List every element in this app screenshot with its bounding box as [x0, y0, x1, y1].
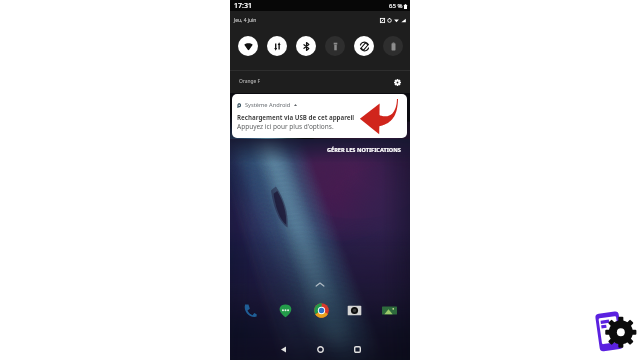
staticText: Jeu, 4 juin: [234, 17, 257, 24]
staticText: Rechargement via USB de cet appareil: [237, 113, 355, 121]
button[interactable]: Recents: [346, 340, 368, 358]
button[interactable]: Settings: [391, 76, 403, 88]
button[interactable]: Phone: [241, 302, 258, 319]
button[interactable]: Photos: [381, 302, 398, 319]
staticText: Appuyez ici pour plus d'options.: [237, 122, 334, 131]
button[interactable]: GÉRER LES NOTIFICATIONS: [325, 144, 403, 156]
button[interactable]: Messages: [277, 302, 294, 319]
staticText: 65 %: [389, 2, 403, 10]
staticText: GÉRER LES NOTIFICATIONS: [327, 146, 401, 154]
button[interactable]: Mobile data: [267, 36, 287, 56]
button[interactable]: Bluetooth: [296, 36, 316, 56]
button[interactable]: Chrome: [313, 302, 330, 319]
staticText: 17:31: [234, 1, 252, 11]
button[interactable]: Camera: [346, 302, 363, 319]
staticText: Système Android: [245, 101, 291, 109]
button[interactable]: Battery saver: [383, 36, 403, 56]
staticText: Orange F: [239, 78, 261, 85]
button[interactable]: Auto-rotate: [354, 36, 374, 56]
button[interactable]: Back: [272, 340, 294, 358]
button[interactable]: Wi-Fi: [238, 36, 258, 56]
button[interactable]: Home: [309, 340, 331, 358]
button[interactable]: Système Android: [232, 94, 407, 138]
button[interactable]: Flashlight: [325, 36, 345, 56]
